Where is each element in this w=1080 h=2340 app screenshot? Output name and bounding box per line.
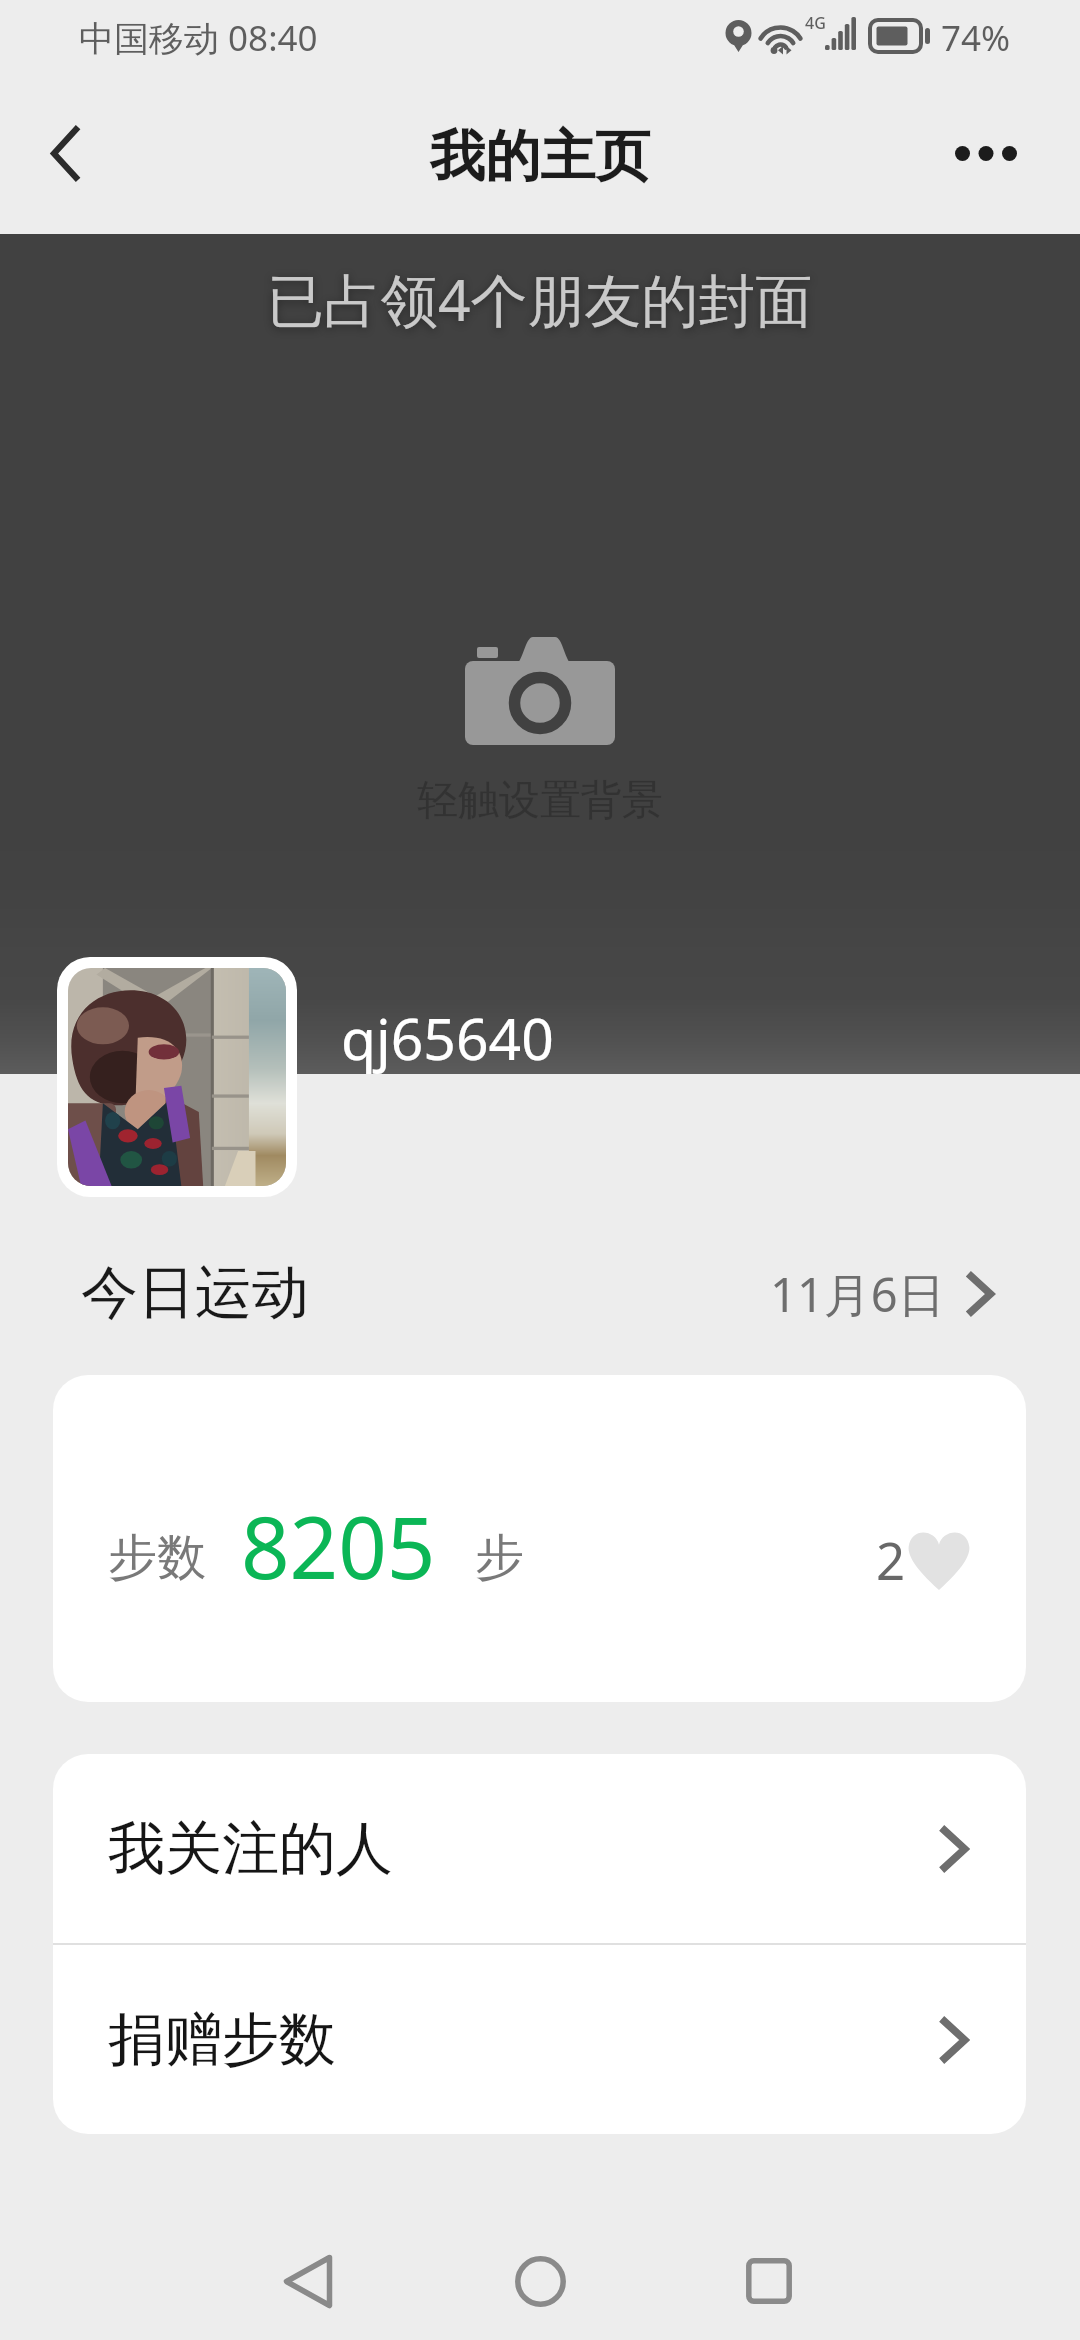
staticText: qj65640 [341,999,554,1077]
button[interactable]: Set background [0,234,1080,1074]
staticText: 轻触设置背景 [417,775,663,827]
staticText: 4G [805,12,826,34]
button[interactable]: 捐赠步数 [53,1945,1026,2134]
button[interactable]: More options [946,89,1080,223]
staticText: 我关注的人 [108,1813,393,1885]
staticText: 我的主页 [430,122,650,191]
button[interactable]: Profile photo [57,957,297,1197]
button[interactable]: 11月6日 [770,1248,1007,1340]
staticText: 74% [941,14,1011,62]
staticText: 8205 [241,1488,436,1604]
button[interactable]: Recent apps [669,2196,869,2340]
button[interactable]: Home [440,2196,640,2340]
button[interactable]: 步数 [53,1375,1026,1702]
staticText: 11月6日 [770,1262,945,1326]
button[interactable]: 我关注的人 [53,1754,1026,1943]
staticText: 步 [475,1527,524,1589]
staticText: 捐赠步数 [108,2004,336,2076]
button[interactable]: Back [208,2196,408,2340]
staticText: 已占领4个朋友的封面 [267,260,813,338]
staticText: 今日运动 [81,1257,309,1329]
button[interactable]: Back [0,89,134,223]
staticText: 步数 [108,1527,206,1589]
staticText: 中国移动 08:40 [79,14,318,62]
staticText: 2 [876,1525,906,1594]
